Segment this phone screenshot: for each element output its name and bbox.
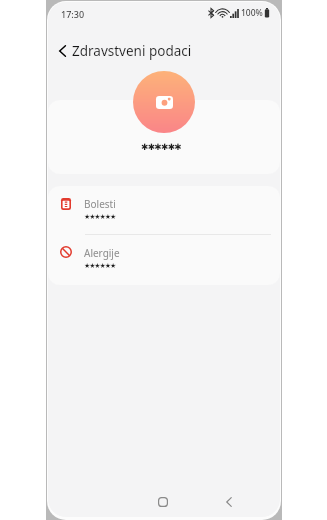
- button[interactable]: Back: [218, 491, 239, 512]
- button[interactable]: Back: [51, 40, 73, 62]
- button[interactable]: Alergije: [48, 235, 280, 283]
- staticText: ✱✱✱✱✱✱: [141, 142, 182, 152]
- staticText: ★★★★★★: [84, 213, 116, 221]
- staticText: Bolesti: [84, 197, 116, 211]
- button[interactable]: Home: [152, 491, 173, 512]
- staticText: 100%: [241, 7, 263, 19]
- button[interactable]: Change profile photo: [133, 71, 195, 133]
- staticText: Zdravstveni podaci: [72, 42, 192, 60]
- staticText: 17:30: [61, 8, 85, 20]
- button[interactable]: Bolesti: [48, 186, 280, 234]
- staticText: Alergije: [84, 246, 120, 260]
- staticText: ★★★★★★: [84, 262, 116, 270]
